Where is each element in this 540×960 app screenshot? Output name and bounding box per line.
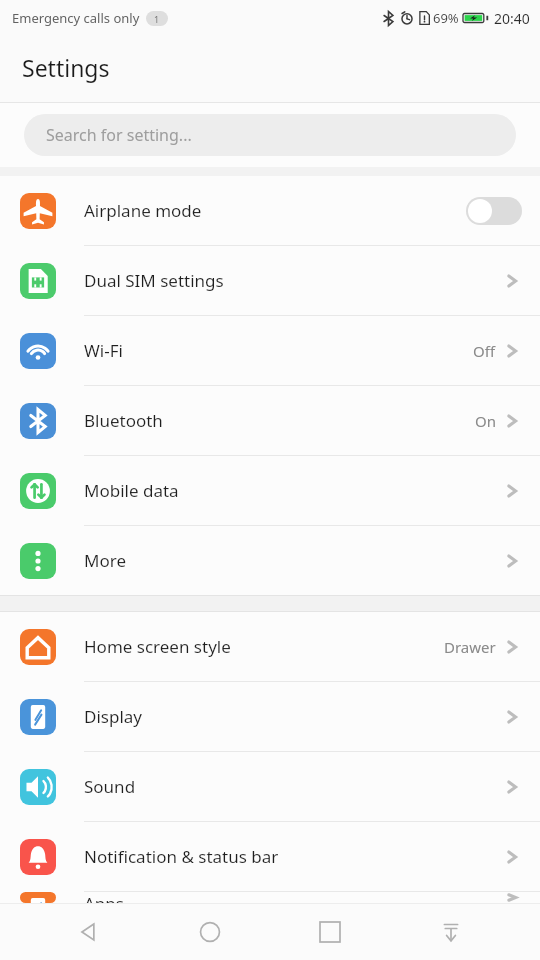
- button[interactable]: Home screen style: [0, 612, 540, 681]
- button[interactable]: Display: [0, 682, 540, 751]
- staticText: Off: [473, 341, 496, 361]
- button[interactable]: Back: [57, 904, 121, 960]
- staticText: Apps: [84, 892, 502, 903]
- button[interactable]: Wi-Fi: [0, 316, 540, 385]
- staticText: Dual SIM settings: [84, 269, 502, 292]
- staticText: 1: [154, 13, 160, 25]
- staticText: Settings: [22, 52, 110, 83]
- button[interactable]: Pull down notifications: [419, 904, 483, 960]
- button[interactable]: Dual SIM settings: [0, 246, 540, 315]
- button[interactable]: Recent apps: [298, 904, 362, 960]
- button[interactable]: Apps: [0, 892, 540, 903]
- staticText: 69%: [433, 9, 459, 27]
- staticText: 20:40: [494, 9, 530, 28]
- staticText: Mobile data: [84, 479, 502, 502]
- button[interactable]: Home: [178, 904, 242, 960]
- button[interactable]: Airplane mode: [0, 176, 540, 245]
- staticText: Emergency calls only: [12, 9, 140, 27]
- button[interactable]: Sound: [0, 752, 540, 821]
- staticText: On: [475, 411, 496, 431]
- staticText: Search for setting...: [46, 124, 192, 146]
- button[interactable]: Airplane mode toggle: [466, 197, 522, 225]
- staticText: More: [84, 549, 502, 572]
- staticText: Sound: [84, 775, 502, 798]
- button[interactable]: More: [0, 526, 540, 595]
- staticText: Display: [84, 705, 502, 728]
- button[interactable]: Mobile data: [0, 456, 540, 525]
- staticText: Home screen style: [84, 635, 444, 658]
- staticText: Airplane mode: [84, 199, 466, 222]
- button[interactable]: Search for setting...: [24, 114, 516, 156]
- staticText: Bluetooth: [84, 409, 475, 432]
- button[interactable]: Bluetooth: [0, 386, 540, 455]
- staticText: Wi-Fi: [84, 339, 473, 362]
- staticText: Notification & status bar: [84, 845, 502, 868]
- staticText: Drawer: [444, 637, 496, 657]
- button[interactable]: Notification & status bar: [0, 822, 540, 891]
